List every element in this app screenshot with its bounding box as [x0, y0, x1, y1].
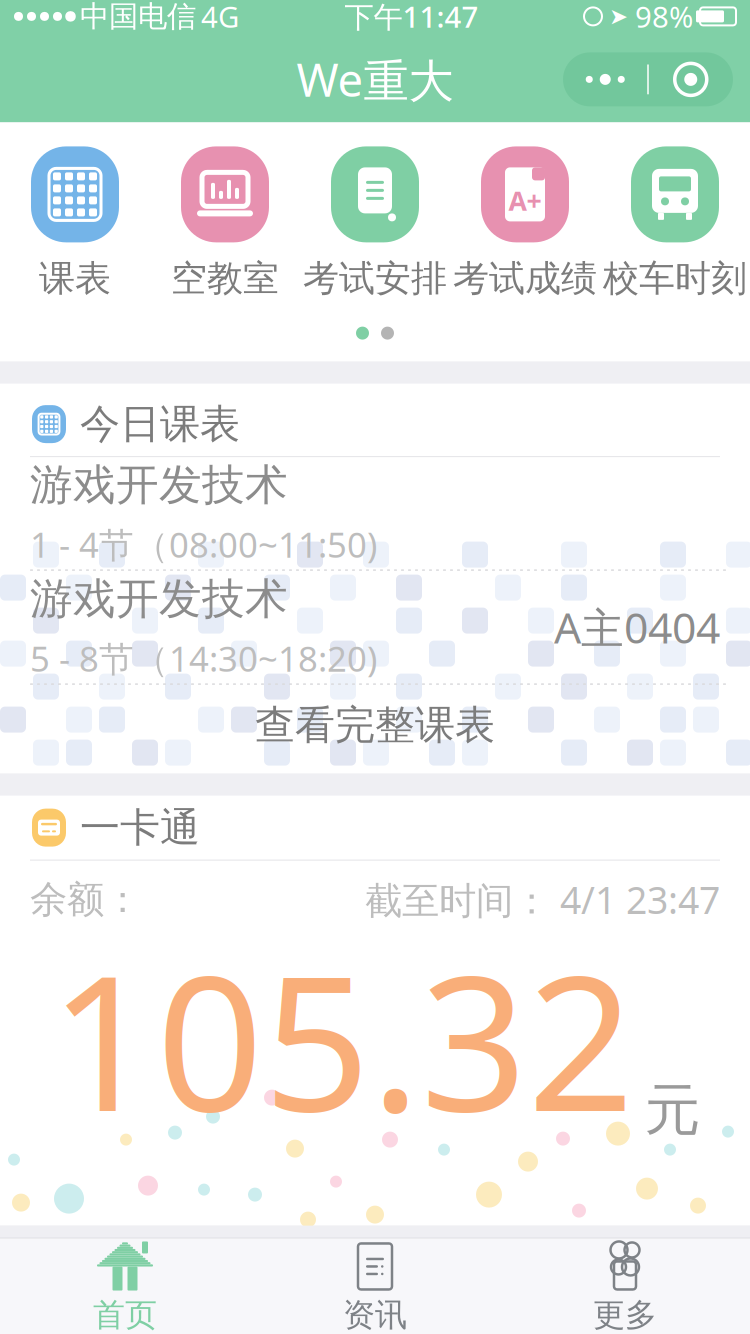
staticText: 余额：	[30, 877, 141, 923]
staticText: 考试安排	[303, 256, 447, 301]
staticText: 校车时刻	[603, 256, 747, 301]
staticText: 截至时间： 4/1 23:47	[365, 875, 720, 924]
staticText: 5 - 8节（14:30~18:20)	[30, 635, 377, 681]
staticText: 一卡通	[80, 803, 200, 852]
staticText: 首页	[93, 1295, 157, 1334]
staticText: 资讯	[343, 1295, 407, 1334]
button[interactable]: A+	[450, 146, 600, 301]
button[interactable]: 查看完整课表	[0, 685, 750, 765]
staticText: A+	[508, 183, 541, 218]
staticText: 课表	[39, 256, 111, 301]
button[interactable]: 空教室	[150, 146, 300, 301]
button[interactable]: 资讯	[250, 1239, 500, 1334]
button[interactable]: 校车时刻	[600, 146, 750, 301]
staticText: 考试成绩	[453, 256, 597, 301]
staticText: 元	[644, 1076, 700, 1145]
staticText: 1 - 4节（08:00~11:50)	[30, 521, 377, 567]
button[interactable]: 课表	[0, 146, 150, 301]
staticText: 游戏开发技术	[30, 573, 288, 625]
staticText: 下午11:47	[344, 0, 478, 36]
staticText: 游戏开发技术	[30, 459, 288, 511]
staticText: We重大	[296, 49, 453, 110]
staticText: 98%	[635, 0, 693, 36]
staticText: A主0404	[554, 599, 720, 656]
staticText: 空教室	[171, 256, 279, 301]
staticText: 查看完整课表	[255, 700, 495, 750]
staticText: 4G	[201, 0, 239, 36]
button[interactable]: 首页	[0, 1239, 250, 1334]
staticText: 今日课表	[80, 399, 240, 449]
button[interactable]: 考试安排	[300, 146, 450, 301]
staticText: 105.32	[49, 915, 634, 1163]
staticText: ➤	[609, 3, 628, 29]
button[interactable]: More and Close	[563, 52, 733, 106]
staticText: 更多	[593, 1295, 657, 1334]
button[interactable]: 更多	[500, 1239, 750, 1334]
staticText: 中国电信	[80, 0, 196, 34]
